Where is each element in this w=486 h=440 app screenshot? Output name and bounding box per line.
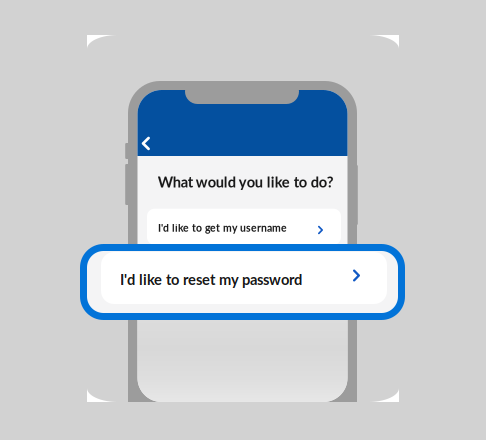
button[interactable]: I'd like to get my username [147,209,341,245]
staticText: I'd like to reset my password [120,270,302,288]
staticText: What would you like to do? [158,173,334,191]
button[interactable]: I'd like to reset my password [80,244,405,320]
staticText: I'd like to get my username [158,222,287,234]
button[interactable]: Back [141,129,167,155]
